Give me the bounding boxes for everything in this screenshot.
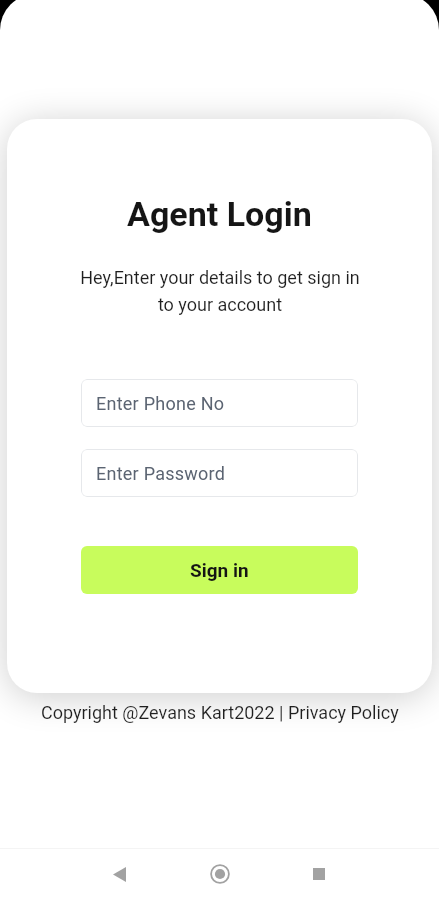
staticText: Enter Password: [96, 463, 226, 484]
button[interactable]: Back: [87, 859, 151, 889]
staticText: Hey,Enter your details to get sign in to…: [75, 267, 365, 315]
button[interactable]: Sign in: [81, 546, 358, 594]
button[interactable]: Recent apps: [287, 859, 351, 889]
staticText: Sign in: [190, 559, 249, 581]
button[interactable]: Enter Phone No: [81, 379, 358, 427]
button[interactable]: Copyright @Zevans Kart2022 | Privacy Pol…: [41, 702, 399, 723]
staticText: Agent Login: [127, 194, 312, 234]
button[interactable]: Home: [188, 859, 252, 889]
staticText: Enter Phone No: [96, 393, 225, 414]
button[interactable]: Enter Password: [81, 449, 358, 497]
